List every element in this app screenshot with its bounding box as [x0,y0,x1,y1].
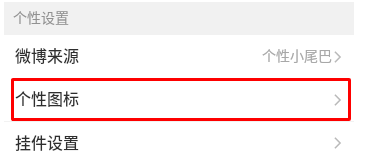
staticText: 微博来源 [15,43,80,66]
staticText: 挂件设置 [15,130,80,153]
staticText: 个性设置 [13,7,69,27]
button[interactable]: 个性图标 [4,78,354,121]
button[interactable]: 微博来源 [4,35,354,78]
other: 个性图标 [334,94,341,106]
other: 微博来源 [334,51,341,63]
other: 挂件设置 [334,137,341,149]
button[interactable]: 挂件设置 [4,125,354,161]
staticText: 个性图标 [15,86,80,109]
staticText: 个性小尾巴 [262,45,332,65]
